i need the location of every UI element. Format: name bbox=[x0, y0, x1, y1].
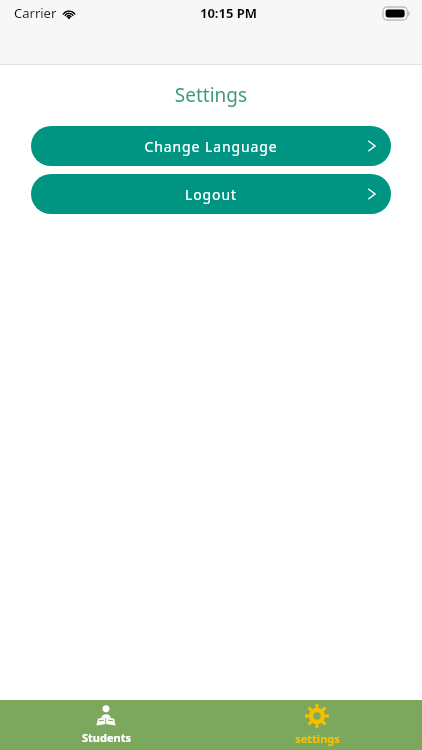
staticText: Logout bbox=[185, 185, 237, 204]
button[interactable]: Settings bbox=[269, 700, 365, 750]
staticText: settings bbox=[295, 731, 340, 746]
staticText: 10:15 PM bbox=[200, 4, 258, 22]
staticText: Change Language bbox=[144, 137, 278, 156]
button[interactable]: Logout bbox=[31, 174, 391, 214]
staticText: Carrier bbox=[14, 4, 57, 22]
staticText: Students bbox=[82, 730, 131, 745]
button[interactable]: Students bbox=[58, 700, 154, 750]
button[interactable]: Change Language bbox=[31, 126, 391, 166]
staticText: Settings bbox=[0, 82, 422, 108]
